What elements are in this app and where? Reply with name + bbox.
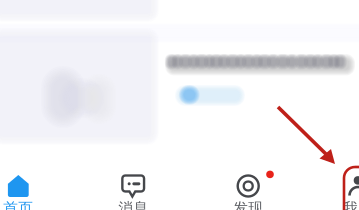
button[interactable]: 首页 <box>0 175 68 210</box>
staticText: 消息 <box>118 199 148 210</box>
staticText: 我的 <box>343 199 359 210</box>
button[interactable]: 我的 <box>308 175 359 210</box>
staticText: 首页 <box>3 199 33 210</box>
staticText: 发现 <box>233 199 263 210</box>
button[interactable]: 消息 <box>83 175 183 210</box>
button[interactable]: 发现 <box>198 175 298 210</box>
